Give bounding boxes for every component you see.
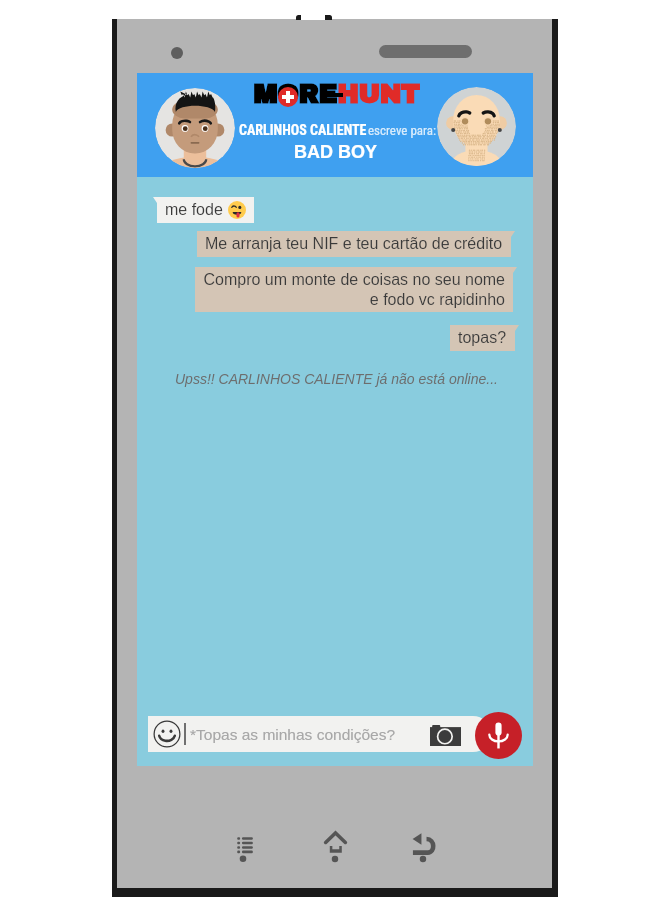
button[interactable]: me fode	[153, 197, 254, 223]
button[interactable]: topas?	[450, 325, 519, 351]
staticText: Compro um monte de coisas no seu nome e …	[203, 271, 505, 308]
staticText: *Topas as minhas condições?	[190, 726, 396, 743]
staticText: Upss!! CARLINHOS CALIENTE já não está on…	[175, 371, 498, 387]
staticText: escreve para:	[368, 123, 437, 138]
button[interactable]: Recent apps	[226, 829, 260, 863]
button[interactable]: Home	[318, 829, 352, 863]
button[interactable]: Me arranja teu NIF e teu cartão de crédi…	[197, 231, 515, 257]
button[interactable]: Record voice message	[475, 712, 522, 759]
staticText: Me arranja teu NIF e teu cartão de crédi…	[205, 235, 503, 253]
staticText: CARLINHOS CALIENTE	[239, 122, 367, 138]
button[interactable]: Back	[408, 829, 442, 863]
button[interactable]: *Topas as minhas condições?	[148, 716, 491, 752]
staticText: MORE	[253, 81, 337, 109]
button[interactable]: Camera	[430, 725, 461, 746]
staticText: me fode	[165, 201, 223, 219]
staticText: topas?	[458, 329, 507, 347]
staticText: BAD BOY	[294, 142, 378, 162]
staticText: HUNT	[337, 81, 420, 109]
button[interactable]: Compro um monte de coisas no seu nome e …	[195, 267, 517, 312]
